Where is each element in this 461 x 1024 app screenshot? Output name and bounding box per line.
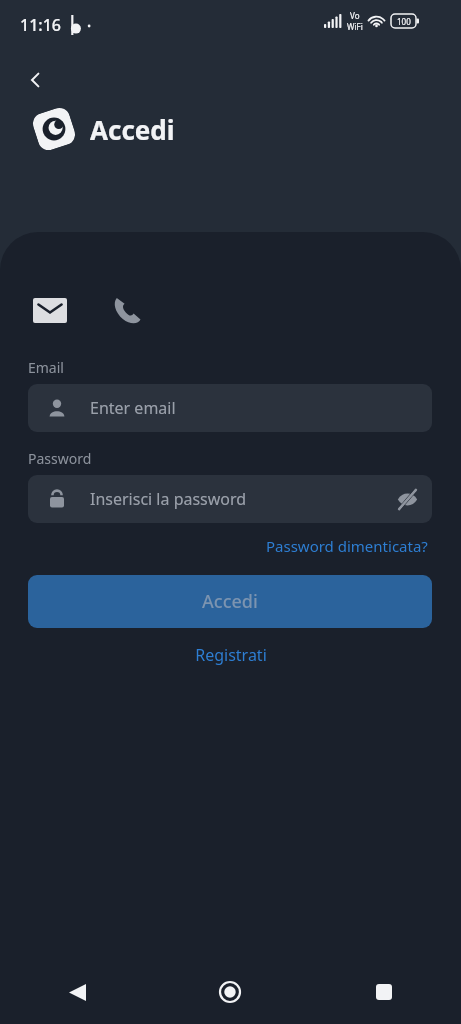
- staticText: Registrati: [195, 644, 267, 666]
- button[interactable]: Accedi: [28, 575, 432, 628]
- button[interactable]: Phone login: [105, 290, 149, 330]
- staticText: Inserisci la password: [90, 488, 247, 510]
- staticText: 100: [397, 16, 411, 27]
- staticText: Vo: [350, 10, 360, 21]
- button[interactable]: Back: [16, 60, 56, 100]
- staticText: Accedi: [90, 112, 175, 147]
- button[interactable]: Email login: [28, 290, 72, 330]
- button[interactable]: Password dimenticata?: [262, 532, 432, 560]
- button[interactable]: Back: [53, 968, 101, 1016]
- button[interactable]: Show password: [388, 480, 426, 518]
- staticText: Password: [28, 449, 92, 468]
- button[interactable]: Registrati: [189, 638, 273, 672]
- button[interactable]: Enter email: [28, 384, 432, 432]
- staticText: Enter email: [90, 397, 176, 419]
- staticText: Accedi: [202, 589, 258, 614]
- staticText: 11:16: [20, 14, 61, 36]
- staticText: Password dimenticata?: [266, 536, 428, 556]
- staticText: WiFi: [347, 21, 363, 32]
- staticText: Email: [28, 358, 64, 377]
- button[interactable]: Home: [206, 968, 254, 1016]
- button[interactable]: Recents: [360, 968, 408, 1016]
- button[interactable]: Inserisci la password: [28, 475, 432, 523]
